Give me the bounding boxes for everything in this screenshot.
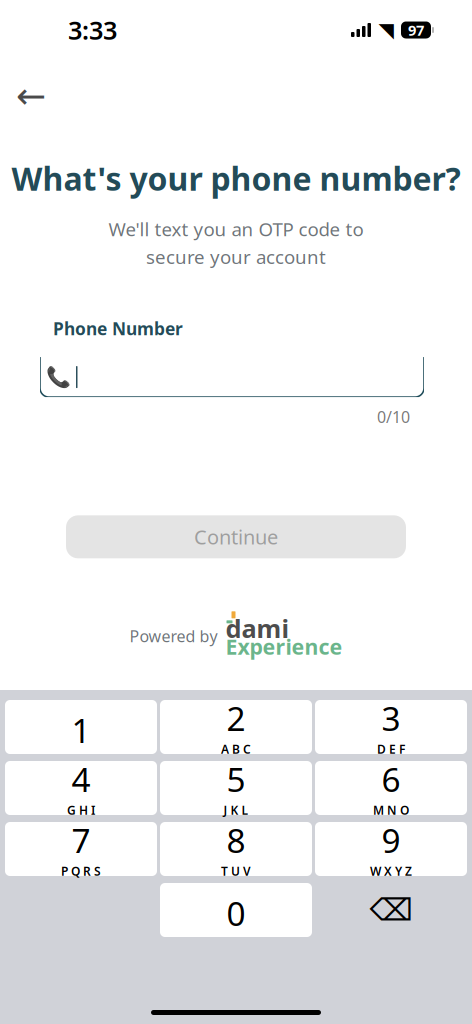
- button[interactable]: Continue: [66, 515, 406, 558]
- button[interactable]: 📞: [40, 357, 424, 397]
- staticText: 7: [71, 818, 90, 862]
- button[interactable]: 2: [160, 700, 312, 754]
- staticText: 📞: [45, 366, 70, 389]
- staticText: dami: [225, 611, 289, 645]
- staticText: P Q R S: [61, 863, 101, 879]
- staticText: G H I: [67, 802, 95, 818]
- button[interactable]: 5: [160, 761, 312, 815]
- staticText: ←: [16, 76, 46, 116]
- staticText: J K L: [223, 802, 248, 818]
- staticText: ⌫: [369, 893, 412, 927]
- staticText: 97: [408, 20, 424, 40]
- button[interactable]: Back: [9, 74, 53, 118]
- staticText: 9: [381, 818, 400, 862]
- staticText: Phone Number: [53, 317, 183, 340]
- staticText: Powered by: [129, 625, 217, 647]
- staticText: 4: [71, 757, 90, 801]
- staticText: 3: [381, 696, 400, 740]
- staticText: ◥: [378, 19, 393, 41]
- staticText: We'll text you an OTP code to: [108, 216, 363, 241]
- staticText: 0/10: [377, 406, 410, 427]
- staticText: Continue: [194, 524, 278, 550]
- button[interactable]: 8: [160, 822, 312, 876]
- button[interactable]: 7: [5, 822, 157, 876]
- staticText: 1: [71, 708, 90, 752]
- staticText: D E F: [377, 741, 405, 757]
- button[interactable]: 6: [315, 761, 467, 815]
- staticText: What's your phone number?: [11, 157, 460, 199]
- staticText: 2: [226, 696, 245, 740]
- staticText: 0: [226, 891, 245, 935]
- button[interactable]: 4: [5, 761, 157, 815]
- button[interactable]: Delete: [315, 883, 467, 937]
- staticText: T U V: [221, 863, 251, 879]
- staticText: Experience: [225, 632, 342, 661]
- staticText: 5: [226, 757, 245, 801]
- staticText: 6: [381, 757, 400, 801]
- button[interactable]: 3: [315, 700, 467, 754]
- button[interactable]: 1: [5, 700, 157, 754]
- staticText: M N O: [373, 802, 409, 818]
- button[interactable]: 0: [160, 883, 312, 937]
- staticText: 8: [226, 818, 245, 862]
- staticText: 3:33: [68, 13, 117, 47]
- staticText: W X Y Z: [370, 863, 412, 879]
- button[interactable]: 9: [315, 822, 467, 876]
- staticText: secure your account: [146, 244, 326, 269]
- staticText: A B C: [221, 741, 251, 757]
